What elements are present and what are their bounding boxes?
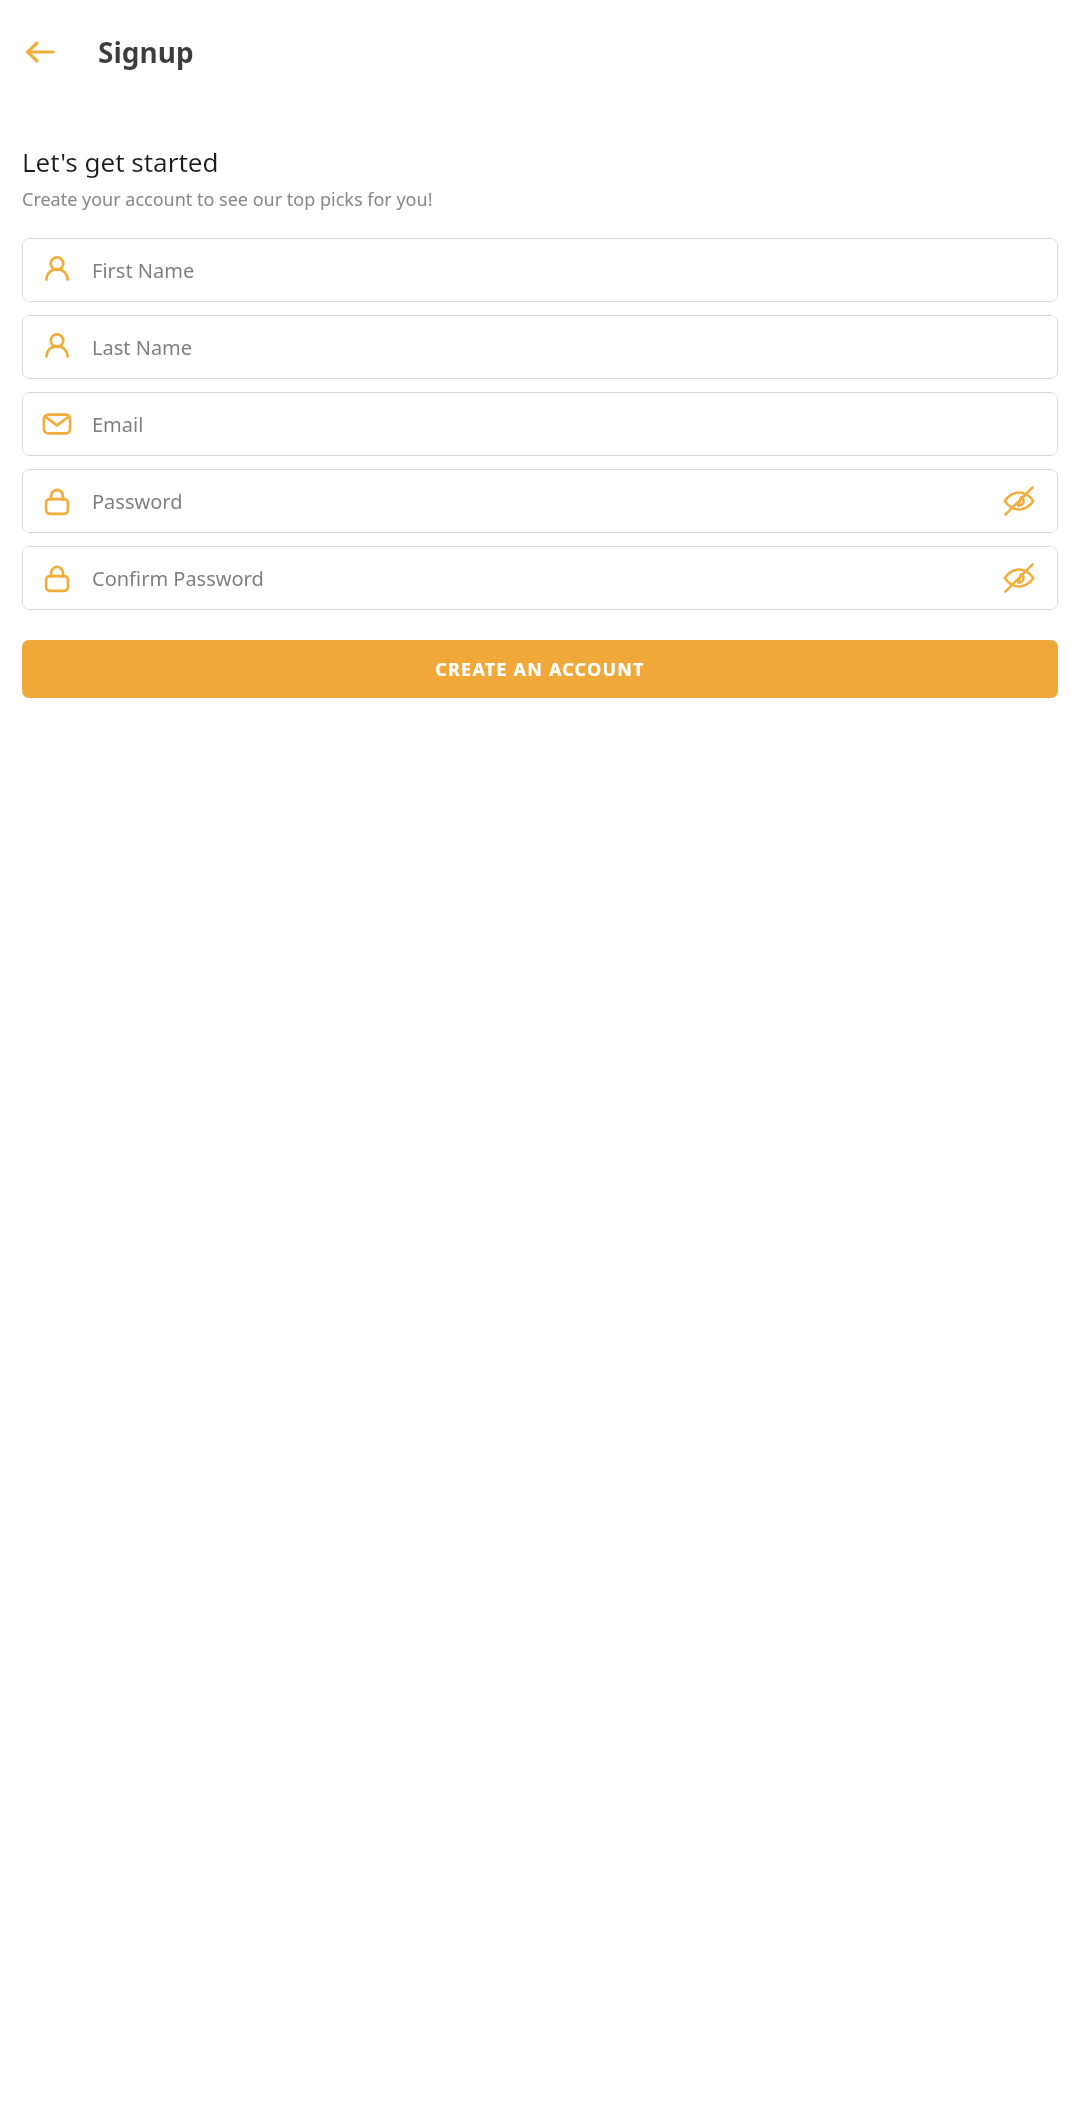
- staticText: Email: [92, 411, 1042, 438]
- button[interactable]: Show password: [980, 546, 1058, 610]
- staticText: CREATE AN ACCOUNT: [435, 657, 645, 682]
- button[interactable]: Password: [22, 469, 1058, 533]
- button[interactable]: Confirm Password: [22, 546, 1058, 610]
- button[interactable]: Last Name: [22, 315, 1058, 379]
- button[interactable]: Back: [12, 24, 68, 80]
- staticText: Confirm Password: [92, 565, 980, 592]
- button[interactable]: CREATE AN ACCOUNT: [22, 640, 1058, 698]
- staticText: Password: [92, 488, 980, 515]
- button[interactable]: Show password: [980, 469, 1058, 533]
- staticText: Last Name: [92, 334, 1042, 361]
- staticText: Let's get started: [22, 144, 219, 179]
- staticText: First Name: [92, 257, 1042, 284]
- staticText: Signup: [98, 33, 194, 71]
- button[interactable]: First Name: [22, 238, 1058, 302]
- button[interactable]: Email: [22, 392, 1058, 456]
- staticText: Create your account to see our top picks…: [22, 187, 433, 212]
